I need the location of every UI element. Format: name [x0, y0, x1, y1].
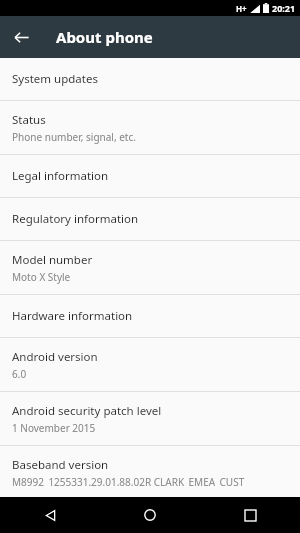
staticText: Android security patch level: [12, 403, 162, 419]
staticText: Regulatory information: [12, 211, 139, 227]
staticText: Baseband version: [12, 457, 109, 473]
staticText: 1 November 2015: [12, 421, 96, 435]
button[interactable]: Android security patch level: [0, 392, 300, 445]
staticText: Moto X Style: [12, 270, 71, 284]
staticText: M8992_1255331.29.01.88.02R CLARK_EMEA_CU…: [12, 475, 245, 487]
button[interactable]: Android version: [0, 338, 300, 391]
staticText: Phone number, signal, etc.: [12, 130, 136, 144]
button[interactable]: Back: [0, 16, 42, 58]
button[interactable]: Back: [0, 497, 100, 533]
button[interactable]: Model number: [0, 241, 300, 294]
button[interactable]: Baseband version: [0, 446, 300, 497]
button[interactable]: Regulatory information: [0, 198, 300, 240]
staticText: 6.0: [12, 367, 27, 381]
staticText: About phone: [56, 27, 153, 47]
button[interactable]: Status: [0, 101, 300, 154]
button[interactable]: Legal information: [0, 155, 300, 197]
button[interactable]: System updates: [0, 58, 300, 100]
staticText: System updates: [12, 71, 98, 87]
button[interactable]: Recent apps: [200, 497, 300, 533]
button[interactable]: Home: [100, 497, 200, 533]
staticText: 20:21: [272, 2, 296, 14]
staticText: Hardware information: [12, 308, 133, 324]
staticText: Legal information: [12, 168, 109, 184]
staticText: Status: [12, 112, 46, 128]
staticText: Model number: [12, 252, 93, 268]
button[interactable]: Hardware information: [0, 295, 300, 337]
staticText: H+: [236, 3, 247, 14]
staticText: Android version: [12, 349, 98, 365]
